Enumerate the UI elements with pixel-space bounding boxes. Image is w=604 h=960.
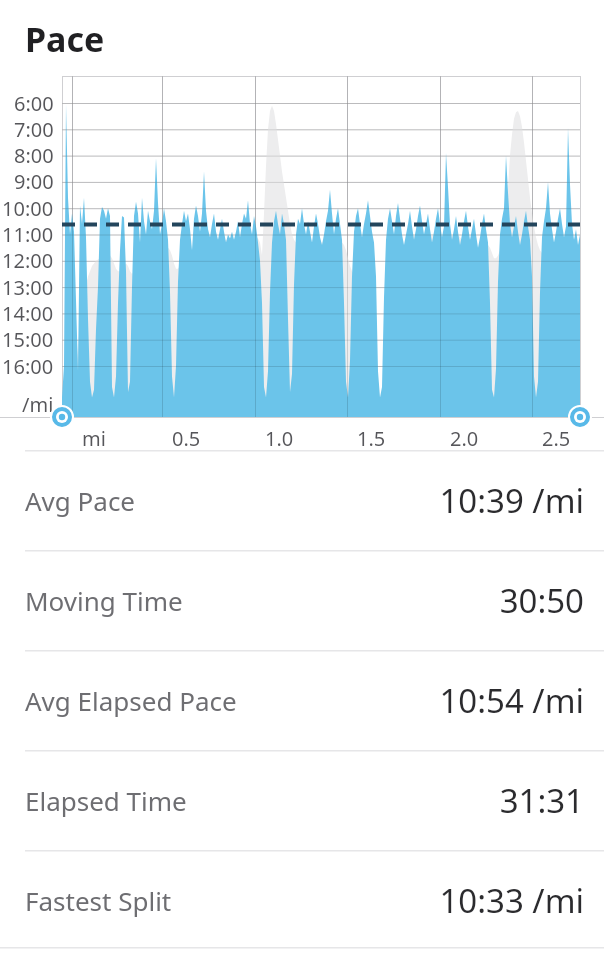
- staticText: Avg Elapsed Pace: [25, 683, 439, 718]
- button[interactable]: Avg Elapsed Pace: [0, 650, 604, 750]
- staticText: 10:33 /mi: [439, 878, 584, 923]
- staticText: Moving Time: [25, 583, 499, 618]
- staticText: Fastest Split: [25, 883, 439, 918]
- staticText: 10:39 /mi: [439, 478, 584, 523]
- staticText: Elapsed Time: [25, 783, 499, 818]
- staticText: 31:31: [499, 778, 584, 823]
- button[interactable]: Moving Time: [0, 550, 604, 650]
- button[interactable]: Elapsed Time: [0, 750, 604, 850]
- staticText: 30:50: [499, 578, 584, 623]
- staticText: Avg Pace: [25, 483, 439, 518]
- button[interactable]: Avg Pace: [0, 450, 604, 550]
- button[interactable]: Fastest Split: [0, 850, 604, 950]
- staticText: 10:54 /mi: [439, 678, 584, 723]
- staticText: Pace: [25, 16, 105, 62]
